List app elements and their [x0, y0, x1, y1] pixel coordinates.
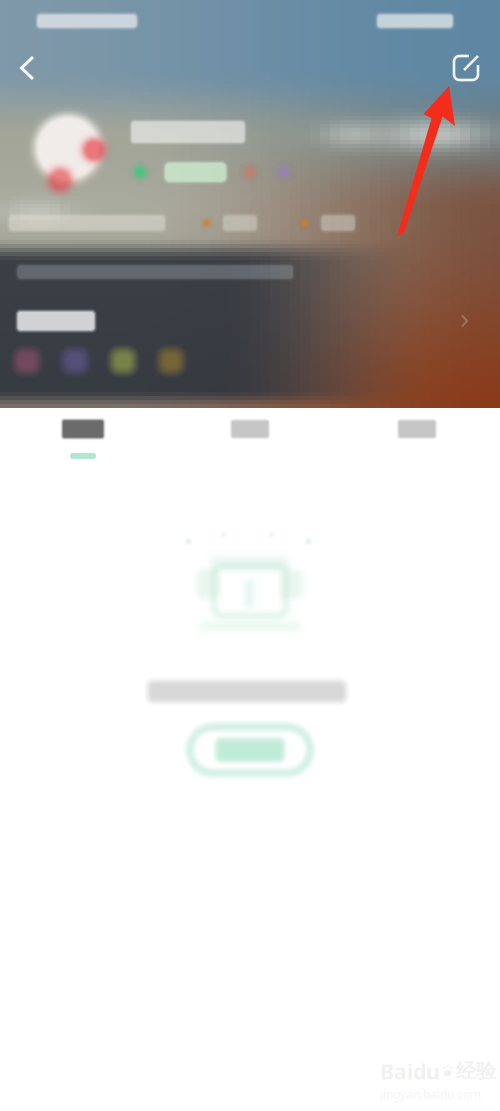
- button[interactable]: [167, 408, 333, 464]
- button[interactable]: [296, 210, 358, 236]
- button[interactable]: [0, 408, 166, 464]
- button[interactable]: Compose: [444, 46, 488, 90]
- button[interactable]: [175, 714, 325, 786]
- button[interactable]: Back: [6, 46, 50, 90]
- staticText: 经验: [456, 1059, 496, 1083]
- staticText: jingyan.baidu.com: [380, 1086, 481, 1102]
- button[interactable]: Profile photo: [18, 98, 118, 198]
- button[interactable]: More: [452, 308, 478, 334]
- button[interactable]: [198, 210, 260, 236]
- button[interactable]: [334, 408, 500, 464]
- staticText: Baidu: [380, 1057, 440, 1085]
